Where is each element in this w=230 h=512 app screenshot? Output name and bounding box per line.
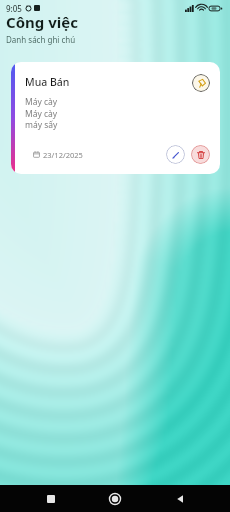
staticText: Mua Bán bbox=[25, 75, 70, 89]
button[interactable]: Back bbox=[166, 485, 194, 512]
button[interactable]: Mua Bán bbox=[11, 62, 220, 174]
button[interactable]: Delete note bbox=[191, 145, 210, 164]
staticText: Danh sách ghi chú bbox=[6, 34, 76, 45]
button[interactable]: Home bbox=[101, 485, 129, 512]
staticText: Máy cày Máy cày máy sấy bbox=[25, 96, 58, 131]
staticText: 23/12/2025 bbox=[43, 150, 83, 160]
button[interactable]: Edit note bbox=[166, 145, 185, 164]
staticText: 9:05 bbox=[6, 3, 22, 14]
button[interactable]: Recent apps bbox=[37, 485, 65, 512]
staticText: Công việc bbox=[6, 12, 78, 32]
button[interactable]: Pin note bbox=[192, 74, 210, 92]
